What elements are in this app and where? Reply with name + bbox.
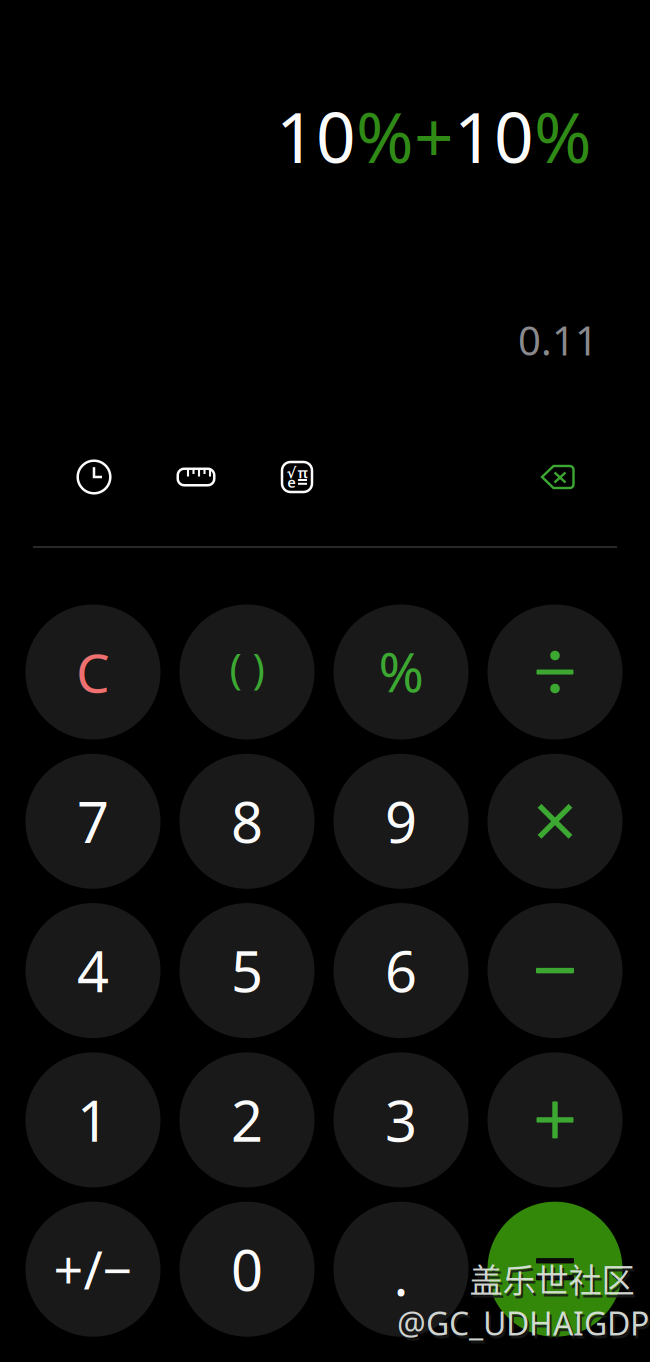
button[interactable]: Divide bbox=[487, 604, 622, 739]
staticText: √ bbox=[286, 464, 296, 481]
button[interactable]: ( ) bbox=[179, 604, 314, 739]
staticText: % bbox=[378, 635, 423, 707]
staticText: C bbox=[76, 637, 110, 707]
staticText: 10 bbox=[276, 90, 356, 182]
button[interactable]: History bbox=[70, 453, 118, 501]
staticText: 7 bbox=[77, 784, 109, 858]
staticText: @GC_UDHAIGDP bbox=[397, 1302, 649, 1344]
button[interactable]: Scientific calculator bbox=[273, 453, 321, 501]
button[interactable]: 9 bbox=[333, 754, 468, 889]
staticText: +/− bbox=[53, 1235, 132, 1304]
button[interactable]: 2 bbox=[179, 1052, 314, 1187]
staticText: 盖乐世社区 bbox=[469, 1254, 634, 1302]
staticText: 9 bbox=[385, 784, 417, 858]
staticText: 6 bbox=[385, 933, 417, 1008]
button[interactable]: Subtract bbox=[487, 903, 622, 1038]
staticText: 0.11 bbox=[518, 313, 598, 366]
staticText: ( ) bbox=[229, 641, 264, 695]
staticText: . bbox=[393, 1237, 408, 1311]
staticText: e bbox=[287, 472, 296, 492]
button[interactable]: Equals bbox=[487, 1202, 622, 1337]
button[interactable]: Multiply bbox=[487, 754, 622, 889]
staticText: 盖乐世社区 bbox=[471, 1257, 636, 1305]
button[interactable]: 7 bbox=[25, 754, 160, 889]
button[interactable]: 8 bbox=[179, 754, 314, 889]
staticText: 3 bbox=[385, 1083, 417, 1157]
button[interactable]: Delete bbox=[534, 453, 582, 501]
button[interactable]: C bbox=[25, 604, 160, 739]
button[interactable]: Add bbox=[487, 1052, 622, 1187]
button[interactable]: 0 bbox=[179, 1202, 314, 1337]
staticText: 5 bbox=[231, 933, 263, 1008]
staticText: @GC_UDHAIGDP bbox=[399, 1305, 650, 1347]
button[interactable]: % bbox=[333, 604, 468, 739]
button[interactable]: 4 bbox=[25, 903, 160, 1038]
staticText: 1 bbox=[77, 1083, 109, 1157]
button[interactable]: 5 bbox=[179, 903, 314, 1038]
staticText: 4 bbox=[77, 933, 109, 1008]
button[interactable]: 1 bbox=[25, 1052, 160, 1187]
button[interactable]: 3 bbox=[333, 1052, 468, 1187]
staticText: 2 bbox=[231, 1083, 263, 1157]
staticText: % bbox=[534, 90, 592, 182]
button[interactable]: +/− bbox=[25, 1202, 160, 1337]
button[interactable]: 6 bbox=[333, 903, 468, 1038]
staticText: 8 bbox=[231, 784, 263, 858]
staticText: π bbox=[297, 463, 307, 482]
button[interactable]: . bbox=[333, 1202, 468, 1337]
staticText: 10 bbox=[454, 90, 534, 182]
staticText: 0 bbox=[231, 1232, 263, 1306]
staticText: % bbox=[356, 90, 414, 182]
button[interactable]: Unit converter bbox=[172, 453, 220, 501]
staticText: + bbox=[414, 90, 454, 182]
